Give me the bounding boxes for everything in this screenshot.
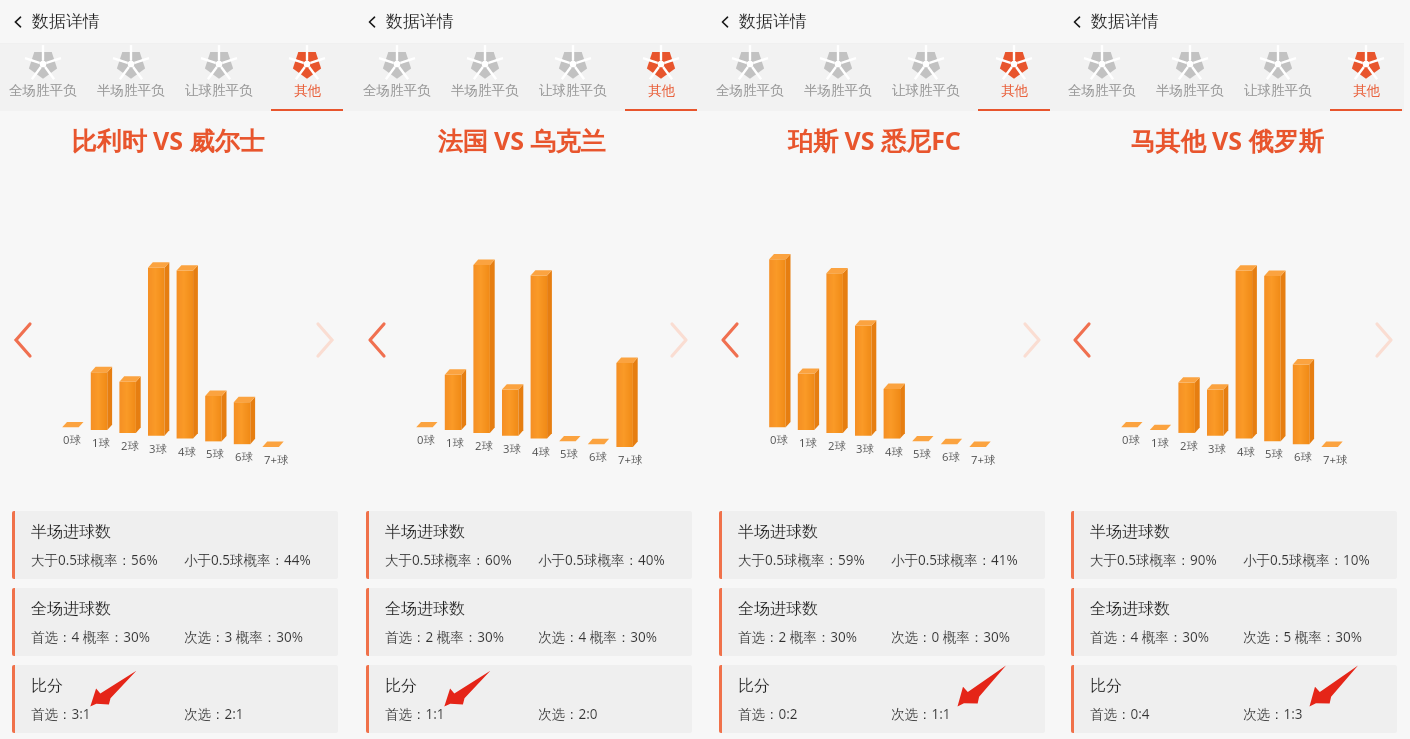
staticText: 半场胜平负 xyxy=(97,82,165,99)
staticText: 次选：0 概率：30% xyxy=(891,628,1010,646)
staticText: 1球 xyxy=(799,435,817,450)
button[interactable]: 其他 xyxy=(1322,44,1410,111)
staticText: 次选：1:1 xyxy=(891,705,951,723)
staticText: 次选：1:3 xyxy=(1243,705,1303,723)
staticText: 3球 xyxy=(149,441,167,456)
staticText: 半场胜平负 xyxy=(804,82,872,99)
staticText: 首选：1:1 xyxy=(385,705,445,723)
button[interactable]: 全场胜平负 xyxy=(1058,44,1146,111)
staticText: 3球 xyxy=(1208,441,1226,456)
staticText: 0球 xyxy=(770,432,788,447)
staticText: 比分 xyxy=(738,676,770,696)
button[interactable]: 全场进球数 xyxy=(719,588,1045,656)
button[interactable]: 让球胜平负 xyxy=(529,44,617,111)
button[interactable]: 全场胜平负 xyxy=(0,44,87,111)
button[interactable]: 半场胜平负 xyxy=(1146,44,1234,111)
button[interactable]: 全场胜平负 xyxy=(706,44,794,111)
staticText: 半场进球数 xyxy=(1090,522,1170,542)
staticText: 2球 xyxy=(1180,438,1198,453)
staticText: 全场进球数 xyxy=(385,599,465,619)
button[interactable]: 半场胜平负 xyxy=(87,44,175,111)
staticText: 次选：3 概率：30% xyxy=(184,628,303,646)
staticText: 5球 xyxy=(560,446,578,461)
button[interactable]: 半场进球数 xyxy=(12,511,338,579)
staticText: 小于0.5球概率：44% xyxy=(184,551,311,569)
staticText: 3球 xyxy=(503,441,521,456)
staticText: 首选：3:1 xyxy=(31,705,91,723)
button[interactable]: 比分 xyxy=(719,665,1045,733)
button[interactable]: 比分 xyxy=(366,665,692,733)
staticText: 珀斯 VS 悉尼FC xyxy=(788,123,961,157)
staticText: 马其他 VS 俄罗斯 xyxy=(1130,123,1324,157)
staticText: 0球 xyxy=(1122,432,1140,447)
button[interactable]: 全场胜平负 xyxy=(353,44,441,111)
staticText: 比利时 VS 威尔士 xyxy=(71,123,265,157)
button[interactable]: Back xyxy=(1069,0,1159,43)
button[interactable]: 让球胜平负 xyxy=(1234,44,1322,111)
button[interactable]: 半场胜平负 xyxy=(794,44,882,111)
staticText: 1球 xyxy=(92,435,110,450)
staticText: 0球 xyxy=(417,432,435,447)
staticText: 次选：2:0 xyxy=(538,705,598,723)
staticText: 6球 xyxy=(589,449,607,464)
staticText: 全场进球数 xyxy=(738,599,818,619)
button[interactable]: 全场进球数 xyxy=(366,588,692,656)
staticText: 次选：4 概率：30% xyxy=(538,628,657,646)
staticText: 次选：2:1 xyxy=(184,705,244,723)
staticText: 比分 xyxy=(385,676,417,696)
button[interactable]: 让球胜平负 xyxy=(175,44,263,111)
staticText: 让球胜平负 xyxy=(1244,82,1312,99)
staticText: 首选：4 概率：30% xyxy=(1090,628,1209,646)
staticText: 7+球 xyxy=(1323,452,1348,467)
staticText: 首选：2 概率：30% xyxy=(738,628,857,646)
button[interactable]: 其他 xyxy=(617,44,697,111)
staticText: 小于0.5球概率：10% xyxy=(1243,551,1370,569)
staticText: 5球 xyxy=(1265,446,1283,461)
button[interactable]: 全场进球数 xyxy=(12,588,338,656)
button[interactable]: 全场进球数 xyxy=(1071,588,1397,656)
button[interactable]: 比分 xyxy=(12,665,338,733)
staticText: 半场进球数 xyxy=(385,522,465,542)
button[interactable]: 比分 xyxy=(1071,665,1397,733)
staticText: 1球 xyxy=(446,435,464,450)
staticText: 6球 xyxy=(942,449,960,464)
staticText: 7+球 xyxy=(971,452,996,467)
staticText: 次选：5 概率：30% xyxy=(1243,628,1362,646)
staticText: 0球 xyxy=(63,432,81,447)
staticText: 其他 xyxy=(294,82,321,99)
staticText: 数据详情 xyxy=(739,11,807,32)
staticText: 6球 xyxy=(235,449,253,464)
staticText: 2球 xyxy=(475,438,493,453)
staticText: 让球胜平负 xyxy=(539,82,607,99)
staticText: 法国 VS 乌克兰 xyxy=(437,123,606,157)
staticText: 7+球 xyxy=(264,452,289,467)
staticText: 全场进球数 xyxy=(1090,599,1170,619)
staticText: 2球 xyxy=(121,438,139,453)
button[interactable]: 其他 xyxy=(263,44,344,111)
staticText: 数据详情 xyxy=(32,11,100,32)
button[interactable]: 半场胜平负 xyxy=(441,44,529,111)
staticText: 数据详情 xyxy=(386,11,454,32)
staticText: 让球胜平负 xyxy=(185,82,253,99)
button[interactable]: Back xyxy=(717,0,807,43)
staticText: 大于0.5球概率：90% xyxy=(1090,551,1217,569)
staticText: 小于0.5球概率：40% xyxy=(538,551,665,569)
button[interactable]: Back xyxy=(364,0,454,43)
button[interactable]: 半场进球数 xyxy=(719,511,1045,579)
staticText: 首选：0:4 xyxy=(1090,705,1150,723)
staticText: 大于0.5球概率：60% xyxy=(385,551,512,569)
button[interactable]: 半场进球数 xyxy=(366,511,692,579)
staticText: 半场进球数 xyxy=(738,522,818,542)
staticText: 半场胜平负 xyxy=(451,82,519,99)
staticText: 小于0.5球概率：41% xyxy=(891,551,1018,569)
staticText: 7+球 xyxy=(618,452,643,467)
button[interactable]: 让球胜平负 xyxy=(882,44,970,111)
staticText: 1球 xyxy=(1151,435,1169,450)
button[interactable]: 其他 xyxy=(970,44,1050,111)
staticText: 全场进球数 xyxy=(31,599,111,619)
button[interactable]: Back xyxy=(10,0,100,43)
staticText: 4球 xyxy=(885,444,903,459)
staticText: 4球 xyxy=(178,444,196,459)
button[interactable]: 半场进球数 xyxy=(1071,511,1397,579)
staticText: 首选：2 概率：30% xyxy=(385,628,504,646)
